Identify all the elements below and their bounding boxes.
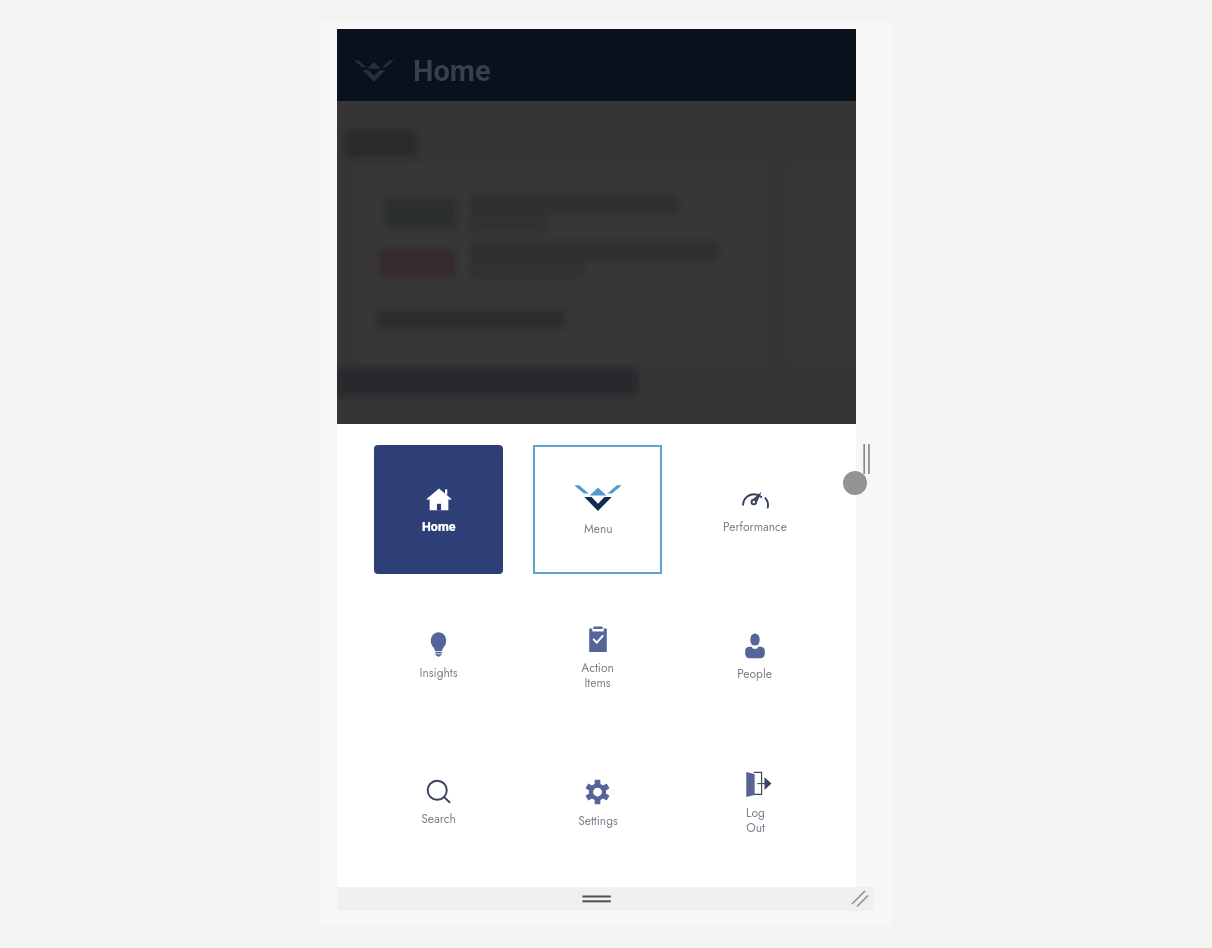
button[interactable]: Navigation menu <box>354 54 394 88</box>
button[interactable]: Menu <box>533 445 662 574</box>
button[interactable]: Log Out <box>691 757 820 886</box>
staticText: Search <box>421 810 456 827</box>
staticText: Home <box>422 519 456 534</box>
staticText: Log Out <box>746 804 765 837</box>
staticText: Action Items <box>581 659 614 692</box>
button[interactable]: Resize panel <box>843 471 867 495</box>
button[interactable]: Settings <box>533 756 662 885</box>
staticText: Home <box>413 54 491 88</box>
staticText: People <box>737 665 772 682</box>
staticText: Performance <box>723 518 787 535</box>
staticText: Insights <box>419 664 458 681</box>
button[interactable]: Performance <box>690 445 819 574</box>
button[interactable]: Insights <box>374 607 503 736</box>
button[interactable]: Drag handle <box>337 887 874 911</box>
staticText: Menu <box>584 520 613 537</box>
button[interactable]: Action Items <box>533 608 662 737</box>
button[interactable]: People <box>690 609 819 738</box>
button[interactable]: Search <box>374 755 503 884</box>
button[interactable]: Home <box>374 445 503 574</box>
staticText: Settings <box>578 812 618 829</box>
